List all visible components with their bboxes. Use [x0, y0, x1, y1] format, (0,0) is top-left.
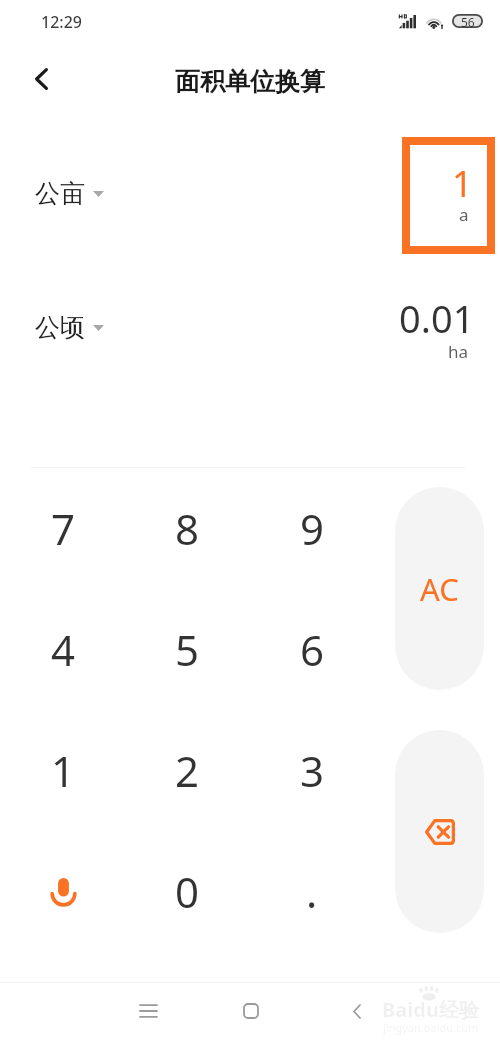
staticText: 4: [51, 621, 76, 678]
staticText: jingyan.baidu.com: [383, 1020, 479, 1035]
button[interactable]: 7: [2, 468, 124, 588]
staticText: 3: [300, 742, 325, 799]
button[interactable]: Backspace: [395, 730, 484, 933]
staticText: 56: [461, 14, 475, 28]
button[interactable]: Back: [12, 41, 70, 117]
button[interactable]: 3: [251, 710, 373, 830]
button[interactable]: .: [251, 831, 373, 951]
staticText: a: [459, 203, 469, 226]
button[interactable]: 0: [126, 831, 248, 951]
button[interactable]: 8: [126, 468, 248, 588]
button[interactable]: Home: [221, 983, 281, 1039]
staticText: Baidu经验: [382, 996, 479, 1023]
button[interactable]: Back: [327, 983, 387, 1039]
button[interactable]: 1: [2, 710, 124, 830]
staticText: 0.01: [399, 292, 475, 344]
staticText: ha: [448, 340, 469, 363]
staticText: 12:29: [41, 11, 82, 33]
staticText: AC: [420, 568, 459, 610]
button[interactable]: Voice input: [2, 831, 124, 951]
button[interactable]: 9: [251, 468, 373, 588]
staticText: 1: [51, 742, 76, 799]
staticText: 8: [175, 500, 200, 557]
staticText: 5: [175, 621, 200, 678]
staticText: 9: [300, 500, 325, 557]
button[interactable]: AC: [395, 487, 484, 690]
button[interactable]: 2: [126, 710, 248, 830]
staticText: 0: [175, 863, 200, 920]
button[interactable]: 6: [251, 589, 373, 709]
staticText: 7: [51, 500, 76, 557]
staticText: 公顷: [35, 312, 85, 343]
staticText: 面积单位换算: [175, 66, 325, 97]
button[interactable]: 5: [126, 589, 248, 709]
staticText: 2: [175, 742, 200, 799]
button[interactable]: 公亩: [35, 170, 104, 218]
staticText: 6: [300, 621, 325, 678]
staticText: .: [306, 863, 318, 920]
button[interactable]: Recent apps: [118, 983, 178, 1039]
staticText: 1: [452, 159, 473, 208]
button[interactable]: 4: [2, 589, 124, 709]
button[interactable]: 公顷: [35, 304, 104, 352]
staticText: 公亩: [35, 178, 85, 209]
button[interactable]: Value 1 a: [402, 137, 495, 254]
